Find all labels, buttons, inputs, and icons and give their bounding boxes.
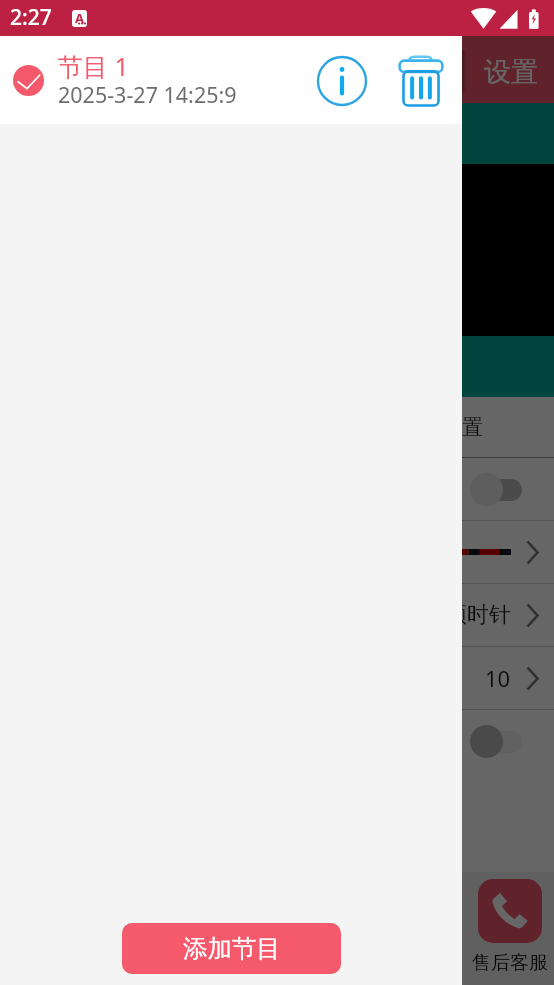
staticText: A (75, 10, 84, 26)
staticText: 亮度设置 (399, 414, 483, 440)
button[interactable]: Delete (392, 52, 450, 110)
staticText: 2025-3-27 14:25:9 (58, 80, 237, 109)
button[interactable]: 添加节目 (122, 923, 341, 974)
button[interactable]: 节目 1 (0, 36, 462, 124)
staticText: 设置 (484, 55, 538, 89)
staticText: 售后客服 (472, 951, 548, 975)
staticText: 顺时针 (445, 601, 511, 629)
button[interactable]: Info (314, 53, 370, 109)
button[interactable]: 顺时针 (0, 584, 554, 646)
staticText: 10 (485, 663, 511, 693)
staticText: 节目 1 (58, 49, 129, 83)
staticText: 添加节目 (183, 933, 281, 964)
button[interactable] (0, 458, 554, 520)
button[interactable]: 10 (0, 647, 554, 709)
staticText: 2:27 (10, 3, 52, 32)
button[interactable] (0, 710, 554, 772)
button[interactable] (0, 521, 554, 583)
